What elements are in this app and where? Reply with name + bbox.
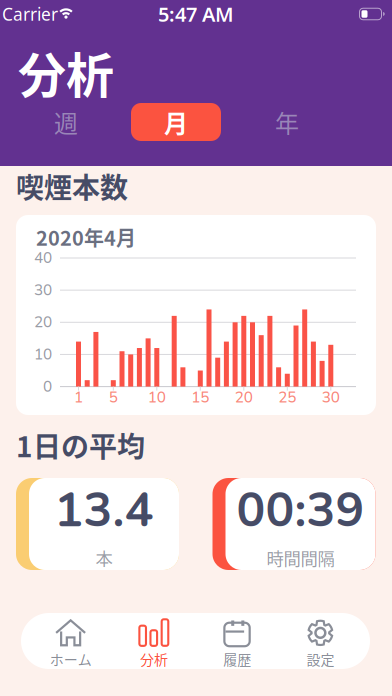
staticText: 20 xyxy=(34,312,52,333)
staticText: 10 xyxy=(148,387,166,408)
staticText: 時間間隔 xyxy=(266,545,334,570)
staticText: 0 xyxy=(43,376,52,397)
staticText: 月 xyxy=(164,105,188,139)
button[interactable]: 設定 xyxy=(279,615,362,667)
staticText: 週 xyxy=(54,105,78,139)
staticText: 5 xyxy=(109,387,118,408)
staticText: 25 xyxy=(278,387,296,408)
staticText: 2020年4月 xyxy=(36,222,136,251)
button[interactable]: 分析 xyxy=(112,615,195,667)
button[interactable]: 週 xyxy=(21,103,111,141)
staticText: 分析 xyxy=(140,649,168,669)
staticText: 15 xyxy=(191,387,209,408)
button[interactable]: 履歴 xyxy=(195,615,279,667)
staticText: 喫煙本数 xyxy=(16,166,128,206)
staticText: ホーム xyxy=(50,649,92,669)
staticText: 13.4 xyxy=(54,478,153,543)
staticText: 20 xyxy=(235,387,253,408)
staticText: 30 xyxy=(322,387,340,408)
staticText: 本 xyxy=(95,545,112,570)
staticText: 1日の平均 xyxy=(16,425,145,465)
staticText: 10 xyxy=(34,344,52,365)
button[interactable]: ホーム xyxy=(29,615,112,667)
staticText: 分析 xyxy=(18,37,114,107)
staticText: 00:39 xyxy=(236,478,364,543)
staticText: 履歴 xyxy=(223,649,251,669)
button[interactable]: 年 xyxy=(242,103,332,141)
staticText: Carrier xyxy=(2,2,58,25)
staticText: 5:47 AM xyxy=(158,1,234,27)
staticText: 30 xyxy=(34,280,52,301)
staticText: 40 xyxy=(34,247,52,268)
staticText: 年 xyxy=(275,105,299,139)
staticText: 設定 xyxy=(306,649,334,669)
staticText: 1 xyxy=(74,387,83,408)
button[interactable]: 月 xyxy=(131,103,221,141)
